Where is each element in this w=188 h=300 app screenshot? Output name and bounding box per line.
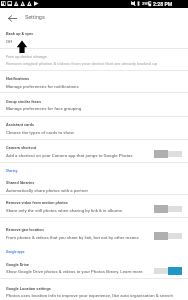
button[interactable] bbox=[0, 176, 188, 194]
staticText: Google Location settings bbox=[6, 286, 51, 291]
button[interactable] bbox=[0, 195, 188, 217]
staticText: Free up device storage bbox=[6, 54, 47, 59]
button[interactable] bbox=[0, 26, 188, 48]
button[interactable] bbox=[0, 140, 188, 162]
staticText: Choose the types of cards to show bbox=[6, 130, 74, 135]
staticText: Manage preferences for face grouping bbox=[6, 106, 82, 111]
staticText: Automatically share photos with a partne… bbox=[6, 188, 89, 193]
button[interactable]: Toggle off bbox=[150, 148, 184, 160]
staticText: Shared libraries bbox=[6, 180, 35, 185]
button[interactable] bbox=[0, 49, 188, 71]
staticText: Assistant cards bbox=[6, 122, 34, 127]
staticText: 39% bbox=[142, 1, 151, 6]
staticText: Show Google Drive photos & videos in you… bbox=[6, 269, 143, 274]
button[interactable] bbox=[0, 257, 188, 278]
staticText: Back up & sync bbox=[6, 31, 34, 36]
staticText: Remove geo location bbox=[6, 227, 44, 232]
staticText: Share only the still photos when sharing… bbox=[6, 208, 123, 213]
button[interactable] bbox=[0, 117, 188, 139]
staticText: From photos & videos that you share by l… bbox=[6, 235, 139, 240]
staticText: Photos uses location info to improve you… bbox=[6, 293, 173, 298]
staticText: Settings bbox=[25, 14, 45, 20]
staticText: Notifications bbox=[6, 76, 30, 81]
button[interactable]: Toggle off bbox=[150, 230, 184, 242]
staticText: Camera shortcut bbox=[6, 145, 37, 150]
staticText: Remove original photos & videos from you… bbox=[6, 61, 158, 66]
button[interactable]: Toggle off bbox=[150, 203, 184, 215]
button[interactable] bbox=[0, 218, 188, 243]
button[interactable]: Toggle on bbox=[150, 265, 184, 277]
staticText: 2:28 PM bbox=[153, 1, 173, 7]
staticText: Sharing bbox=[6, 169, 18, 173]
staticText: Off bbox=[6, 39, 13, 44]
staticText: Add a shortcut on your Camera app that j… bbox=[6, 153, 133, 158]
button[interactable] bbox=[0, 71, 188, 92]
staticText: Group similar faces bbox=[6, 99, 42, 104]
button[interactable] bbox=[0, 279, 188, 300]
button[interactable]: Back bbox=[6, 12, 18, 24]
staticText: Google apps bbox=[6, 250, 25, 254]
button[interactable] bbox=[0, 93, 188, 115]
staticText: Remove video from motion photos bbox=[6, 200, 68, 205]
staticText: Google Drive bbox=[6, 262, 30, 267]
staticText: Manage preferences for notifications bbox=[6, 84, 79, 89]
